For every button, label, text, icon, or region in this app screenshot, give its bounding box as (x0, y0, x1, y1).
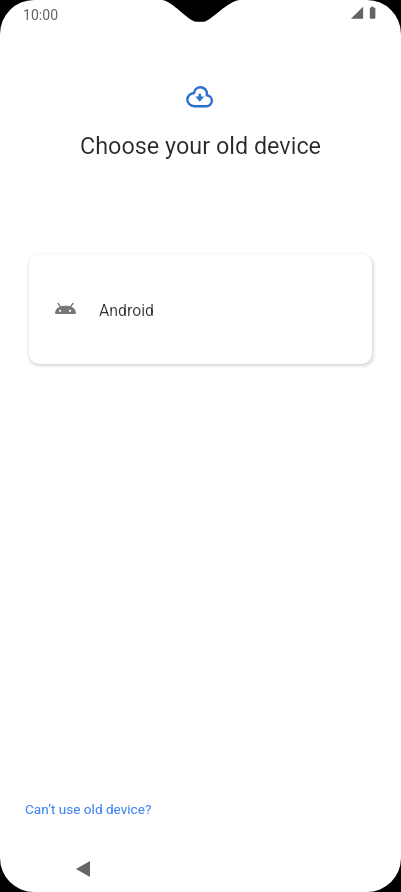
staticText: 10:00 (23, 7, 59, 23)
staticText: Choose your old device (0, 132, 401, 159)
button[interactable]: Android (29, 254, 372, 364)
button[interactable]: Can’t use old device? (19, 797, 158, 821)
staticText: Android (99, 301, 154, 320)
staticText: Can’t use old device? (25, 801, 152, 817)
button[interactable]: Back (61, 847, 105, 891)
